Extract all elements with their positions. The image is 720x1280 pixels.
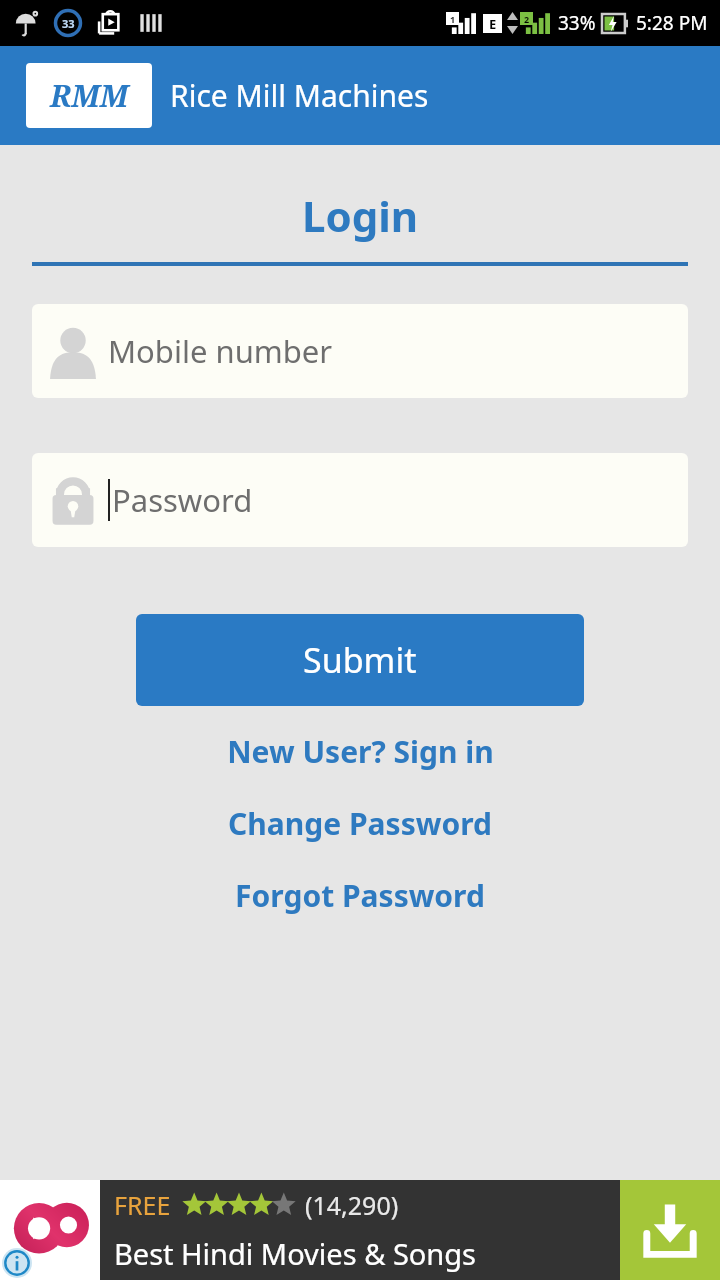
staticText: Login — [0, 187, 720, 244]
staticText: (14,290) — [305, 1188, 399, 1222]
staticText: RMM — [50, 75, 129, 116]
staticText: Change Password — [228, 803, 492, 844]
button[interactable]: Password — [32, 453, 688, 547]
staticText: E — [489, 15, 497, 33]
staticText: Best Hindi Movies & Songs — [114, 1234, 477, 1273]
staticText: Rice Mill Machines — [170, 75, 429, 116]
button[interactable]: Download — [620, 1180, 720, 1280]
button[interactable]: Submit — [136, 614, 584, 706]
button[interactable]: Change Password — [0, 799, 720, 848]
button[interactable]: Mobile number — [32, 304, 688, 398]
staticText: Forgot Password — [235, 875, 485, 916]
button[interactable]: New User? Sign in — [0, 727, 720, 776]
staticText: Mobile number — [108, 330, 333, 372]
staticText: 5:28 PM — [636, 10, 708, 36]
staticText: FREE — [114, 1188, 171, 1222]
button[interactable]: Forgot Password — [0, 871, 720, 920]
staticText: 33 — [62, 16, 75, 31]
staticText: Submit — [303, 637, 417, 683]
staticText: 2 — [524, 13, 530, 25]
staticText: New User? Sign in — [227, 731, 494, 772]
staticText: Password — [112, 479, 253, 521]
staticText: 1 — [450, 13, 456, 25]
staticText: 33% — [558, 10, 596, 36]
